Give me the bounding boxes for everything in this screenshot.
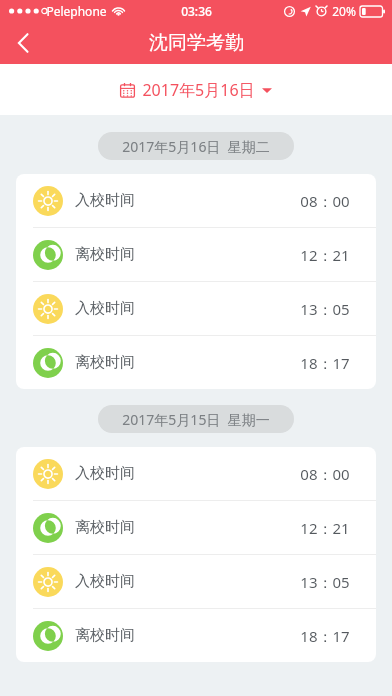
button[interactable]: 入校时间 [16,555,376,608]
staticText: 13：05 [300,572,350,592]
staticText: 13：05 [300,299,350,319]
staticText: 入校时间 [75,299,135,318]
staticText: 03:36 [181,3,212,19]
button[interactable]: Back [0,22,48,64]
staticText: 08：00 [300,464,350,484]
staticText: 入校时间 [75,572,135,591]
button[interactable]: 离校时间 [16,336,376,389]
staticText: 2017年5月16日 星期二 [122,137,270,156]
staticText: 20% [332,3,356,19]
staticText: 18：17 [300,353,350,373]
staticText: 入校时间 [75,191,135,210]
button[interactable]: 离校时间 [16,501,376,554]
button[interactable]: 2017年5月16日 [110,73,282,107]
staticText: 08：00 [300,191,350,211]
staticText: 沈同学考勤 [149,31,244,55]
staticText: 12：21 [300,518,350,538]
button[interactable]: 入校时间 [16,174,376,227]
button[interactable]: 离校时间 [16,228,376,281]
staticText: 离校时间 [75,245,135,264]
button[interactable]: 入校时间 [16,282,376,335]
staticText: Pelephone [46,3,107,19]
staticText: 12：21 [300,245,350,265]
button[interactable]: 离校时间 [16,609,376,662]
staticText: 离校时间 [75,518,135,537]
staticText: 2017年5月15日 星期一 [122,410,270,429]
staticText: 离校时间 [75,626,135,645]
staticText: 2017年5月16日 [142,79,255,101]
staticText: 入校时间 [75,464,135,483]
staticText: 离校时间 [75,353,135,372]
button[interactable]: 入校时间 [16,447,376,500]
staticText: 18：17 [300,626,350,646]
